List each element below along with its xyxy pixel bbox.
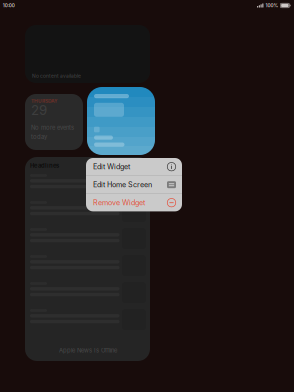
staticText: No content available [32,73,81,79]
staticText: Edit Home Screen [93,180,152,189]
staticText: today [31,133,47,140]
button[interactable]: Headlines [25,157,150,361]
staticText: 100% [265,3,278,8]
staticText: Edit Widget [93,162,130,171]
button[interactable]: Edit Widget [86,158,182,175]
button[interactable]: Remove Widget [86,194,182,211]
button[interactable]: Edit Home Screen [86,176,182,193]
staticText: Headlines [30,162,59,169]
staticText: No more events [31,124,74,131]
staticText: 10:00 [3,3,15,8]
staticText: Apple News Is Offline [59,347,117,354]
staticText: THURSDAY [31,98,58,104]
staticText: Remove Widget [93,198,145,207]
button[interactable]: THURSDAY [25,94,83,150]
staticText: 29 [31,102,47,118]
